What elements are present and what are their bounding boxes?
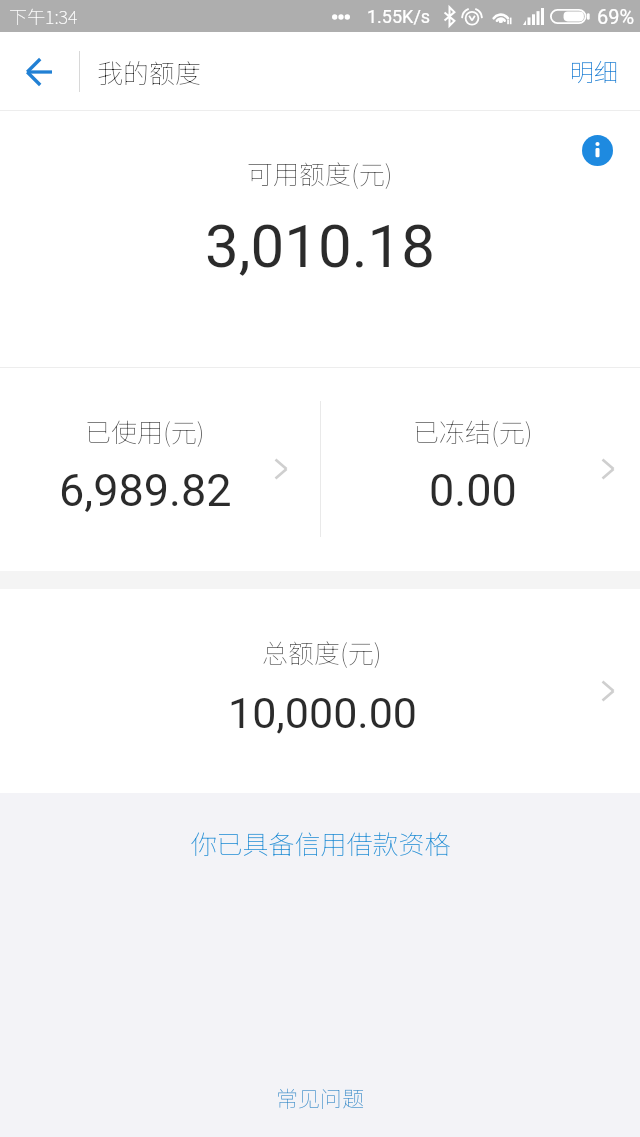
staticText: 1.55K/s	[367, 6, 431, 27]
staticText: 下午1:34	[9, 3, 78, 29]
button[interactable]: Back	[0, 32, 79, 111]
staticText: 0.00	[429, 464, 517, 517]
staticText: 已冻结(元)	[413, 412, 533, 450]
staticText: 10,000.00	[228, 688, 417, 738]
button[interactable]: 已冻结(元)	[321, 368, 640, 571]
button[interactable]: 常见问题	[0, 1069, 640, 1137]
staticText: 你已具备信用借款资格	[190, 824, 451, 862]
staticText: 69%	[597, 5, 635, 28]
staticText: 3,010.18	[205, 211, 435, 281]
button[interactable]: 已使用(元)	[0, 368, 320, 571]
button[interactable]: 你已具备信用借款资格	[0, 820, 640, 866]
button[interactable]: 总额度(元)	[0, 589, 640, 793]
button[interactable]: 明细	[548, 32, 640, 111]
staticText: 总额度(元)	[262, 633, 382, 671]
button[interactable]: Info	[582, 135, 613, 166]
staticText: 明细	[570, 53, 618, 88]
staticText: 可用额度(元)	[247, 154, 393, 192]
staticText: 6,989.82	[59, 464, 232, 517]
staticText: 我的额度	[97, 53, 202, 91]
staticText: 常见问题	[276, 1081, 365, 1113]
staticText: 已使用(元)	[85, 412, 205, 450]
